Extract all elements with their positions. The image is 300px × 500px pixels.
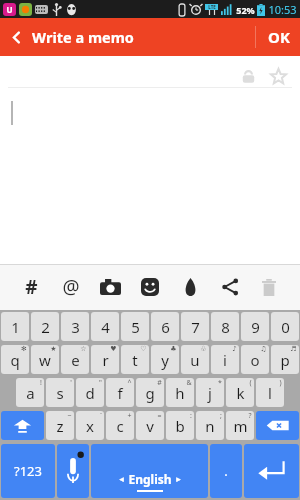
button[interactable]: d (76, 378, 104, 407)
button[interactable]: q (1, 345, 29, 374)
button[interactable]: a (16, 378, 44, 407)
button[interactable]: Hashtag (14, 270, 48, 304)
button[interactable]: 2 (31, 312, 59, 341)
button[interactable]: Emoji (133, 270, 167, 304)
button[interactable]: 6 (151, 312, 179, 341)
staticText: h (175, 383, 185, 403)
button[interactable]: b (166, 411, 194, 440)
staticText: & (186, 378, 192, 388)
staticText: r (102, 350, 109, 370)
staticText: ( (249, 378, 252, 388)
button[interactable]: g (136, 378, 164, 407)
staticText: ♥ (110, 345, 117, 353)
button[interactable]: Enter (244, 444, 299, 498)
button[interactable]: Mention (54, 270, 88, 304)
button[interactable]: m (226, 411, 254, 440)
staticText: n (205, 416, 215, 436)
button[interactable]: r (91, 345, 119, 374)
staticText: ' (70, 378, 72, 388)
staticText: @ (62, 274, 80, 300)
button[interactable]: Favorite (264, 62, 292, 90)
button[interactable]: k (226, 378, 254, 407)
staticText: ; (220, 411, 222, 421)
staticText: # (25, 274, 38, 300)
button[interactable]: . (210, 444, 242, 498)
button[interactable]: o (241, 345, 269, 374)
staticText: ?123 (14, 462, 42, 480)
staticText: ~ (67, 411, 72, 421)
staticText: p (280, 350, 290, 370)
staticText: 1 (11, 317, 20, 337)
button[interactable]: Ink (173, 270, 207, 304)
staticText: t (132, 350, 138, 370)
staticText: LTE (208, 4, 216, 10)
button[interactable]: Lock memo (234, 62, 262, 90)
staticText: : (190, 411, 192, 421)
button[interactable]: Delete (252, 270, 286, 304)
staticText: 3 (71, 317, 80, 337)
button[interactable]: Share (213, 270, 247, 304)
staticText: 52% (236, 4, 255, 16)
staticText: q (10, 350, 20, 370)
button[interactable]: i (211, 345, 239, 374)
staticText: m (233, 416, 248, 436)
staticText: 0 (281, 317, 290, 337)
button[interactable]: l (256, 378, 284, 407)
button[interactable]: h (166, 378, 194, 407)
button[interactable]: Shift (1, 411, 44, 440)
button[interactable]: 5 (121, 312, 149, 341)
staticText: 8 (221, 317, 230, 337)
button[interactable]: c (106, 411, 134, 440)
staticText: OK (268, 27, 290, 47)
other: Back (10, 31, 23, 44)
button[interactable]: 1 (1, 312, 29, 341)
button[interactable]: v (136, 411, 164, 440)
staticText: g (145, 383, 155, 403)
button[interactable]: Voice input (57, 444, 89, 498)
button[interactable]: t (121, 345, 149, 374)
button[interactable]: 9 (241, 312, 269, 341)
button[interactable]: j (196, 378, 224, 407)
staticText: ◂ (119, 474, 124, 484)
button[interactable]: Back (0, 18, 142, 56)
staticText: ♣ (170, 345, 177, 353)
button[interactable]: p (271, 345, 299, 374)
staticText: ★ (50, 345, 57, 353)
button[interactable]: x (76, 411, 104, 440)
button[interactable]: y (151, 345, 179, 374)
staticText: v (146, 416, 154, 436)
button[interactable]: u (181, 345, 209, 374)
button[interactable]: 4 (91, 312, 119, 341)
button[interactable]: z (46, 411, 74, 440)
staticText: y (161, 350, 169, 370)
button[interactable]: s (46, 378, 74, 407)
staticText: o (250, 350, 260, 370)
staticText: 5 (131, 317, 140, 337)
staticText: l (268, 383, 272, 403)
staticText: = (157, 411, 162, 421)
button[interactable]: 7 (181, 312, 209, 341)
staticText: ♫ (260, 345, 267, 353)
button[interactable]: e (61, 345, 89, 374)
staticText: 4 (101, 317, 110, 337)
staticText: ! (40, 378, 42, 388)
staticText: ☆ (80, 345, 87, 353)
button[interactable]: f (106, 378, 134, 407)
button[interactable]: Space, English (91, 444, 208, 498)
staticText: ` (100, 411, 102, 421)
staticText: 2 (41, 317, 50, 337)
button[interactable]: n (196, 411, 224, 440)
button[interactable]: w (31, 345, 59, 374)
staticText: b (175, 416, 185, 436)
button[interactable]: OK (258, 18, 300, 56)
button[interactable]: 8 (211, 312, 239, 341)
button[interactable]: Camera (93, 270, 127, 304)
staticText: + (127, 411, 132, 421)
staticText: 10:53 (268, 2, 297, 17)
staticText: f (117, 383, 123, 403)
button[interactable]: Backspace (256, 411, 299, 440)
staticText: z (56, 416, 64, 436)
button[interactable]: 3 (61, 312, 89, 341)
button[interactable]: 0 (271, 312, 299, 341)
button[interactable]: ?123 (1, 444, 55, 498)
